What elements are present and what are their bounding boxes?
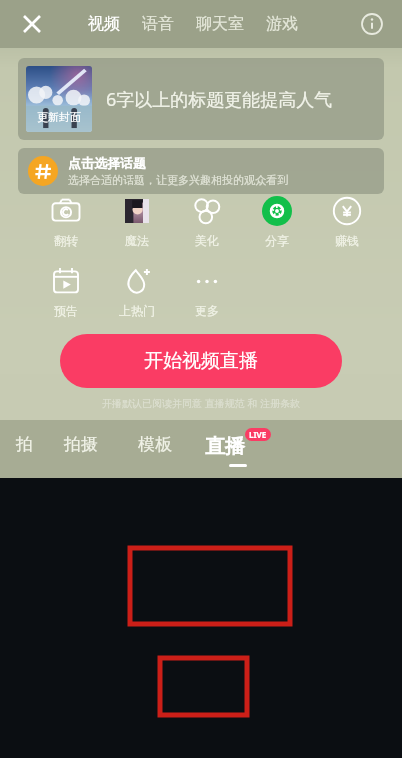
staticText: 视频	[88, 14, 120, 34]
staticText: 分享	[265, 233, 289, 248]
staticText: 直播	[205, 434, 245, 459]
button[interactable]: 分享	[242, 194, 312, 250]
button[interactable]: 开始视频直播	[60, 334, 342, 388]
button[interactable]: 更多	[172, 264, 242, 320]
staticText: 游戏	[266, 14, 298, 34]
button[interactable]: 拍摄	[44, 434, 118, 455]
button[interactable]: 聊天室	[185, 8, 255, 40]
staticText: 开播默认已阅读并同意 直播规范 和 注册条款	[0, 396, 402, 410]
staticText: 更新封面	[37, 110, 81, 124]
button[interactable]: 预告	[30, 264, 101, 320]
staticText: 语音	[142, 14, 174, 34]
button[interactable]: 语音	[131, 8, 185, 40]
staticText: 选择合适的话题，让更多兴趣相投的观众看到	[68, 173, 288, 187]
staticText: 模板	[138, 434, 172, 455]
button[interactable]: 点击选择话题	[18, 148, 384, 194]
staticText: 拍	[16, 434, 33, 455]
staticText: 预告	[54, 303, 78, 318]
staticText: 魔法	[125, 233, 149, 248]
staticText: 上热门	[119, 303, 155, 318]
staticText: 开始视频直播	[144, 349, 258, 373]
button[interactable]: 上热门	[101, 264, 172, 320]
button[interactable]: Info	[352, 4, 392, 44]
staticText: LIVE	[249, 429, 267, 440]
button[interactable]: 直播	[205, 434, 271, 459]
button[interactable]: 模板	[118, 434, 192, 455]
staticText: 聊天室	[196, 14, 244, 34]
button[interactable]: 视频	[77, 8, 131, 40]
staticText: 6字以上的标题更能提高人气	[106, 87, 333, 112]
staticText: 点击选择话题	[68, 155, 146, 171]
staticText: 更多	[195, 303, 219, 318]
staticText: 翻转	[54, 233, 78, 248]
button[interactable]: 魔法	[101, 194, 172, 250]
button[interactable]: Close	[12, 4, 52, 44]
button[interactable]: 游戏	[255, 8, 309, 40]
button[interactable]: Update cover	[18, 58, 384, 140]
button[interactable]: 美化	[172, 194, 242, 250]
button[interactable]: 拍	[4, 434, 44, 455]
staticText: 拍摄	[64, 434, 98, 455]
staticText: 美化	[195, 233, 219, 248]
button[interactable]: Update cover	[26, 66, 92, 132]
button[interactable]: 翻转	[30, 194, 101, 250]
staticText: 赚钱	[335, 233, 359, 248]
button[interactable]: 赚钱	[312, 194, 382, 250]
